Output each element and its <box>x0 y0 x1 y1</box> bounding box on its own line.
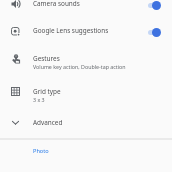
staticText: Grid type <box>33 87 61 96</box>
button[interactable]: Toggle <box>146 0 164 13</box>
button[interactable] <box>0 0 172 17</box>
staticText: 3 x 3 <box>33 96 45 103</box>
button[interactable] <box>0 77 172 107</box>
other: Grid type <box>11 87 20 96</box>
button[interactable] <box>0 18 172 45</box>
button[interactable] <box>0 109 172 136</box>
button[interactable] <box>0 45 172 75</box>
staticText: Photo <box>33 147 49 155</box>
staticText: Google Lens suggestions <box>33 26 109 35</box>
other: Gestures <box>11 54 22 65</box>
button[interactable]: Toggle <box>146 24 164 40</box>
other: Expand advanced <box>11 118 20 127</box>
button[interactable]: Photo <box>27 144 53 158</box>
other: Camera sounds <box>10 0 22 10</box>
staticText: Camera sounds <box>33 0 80 8</box>
staticText: Gestures <box>33 54 60 63</box>
other: Google Lens <box>11 27 20 36</box>
staticText: Advanced <box>33 118 63 127</box>
staticText: Volume key action, Double-tap action <box>33 63 126 70</box>
